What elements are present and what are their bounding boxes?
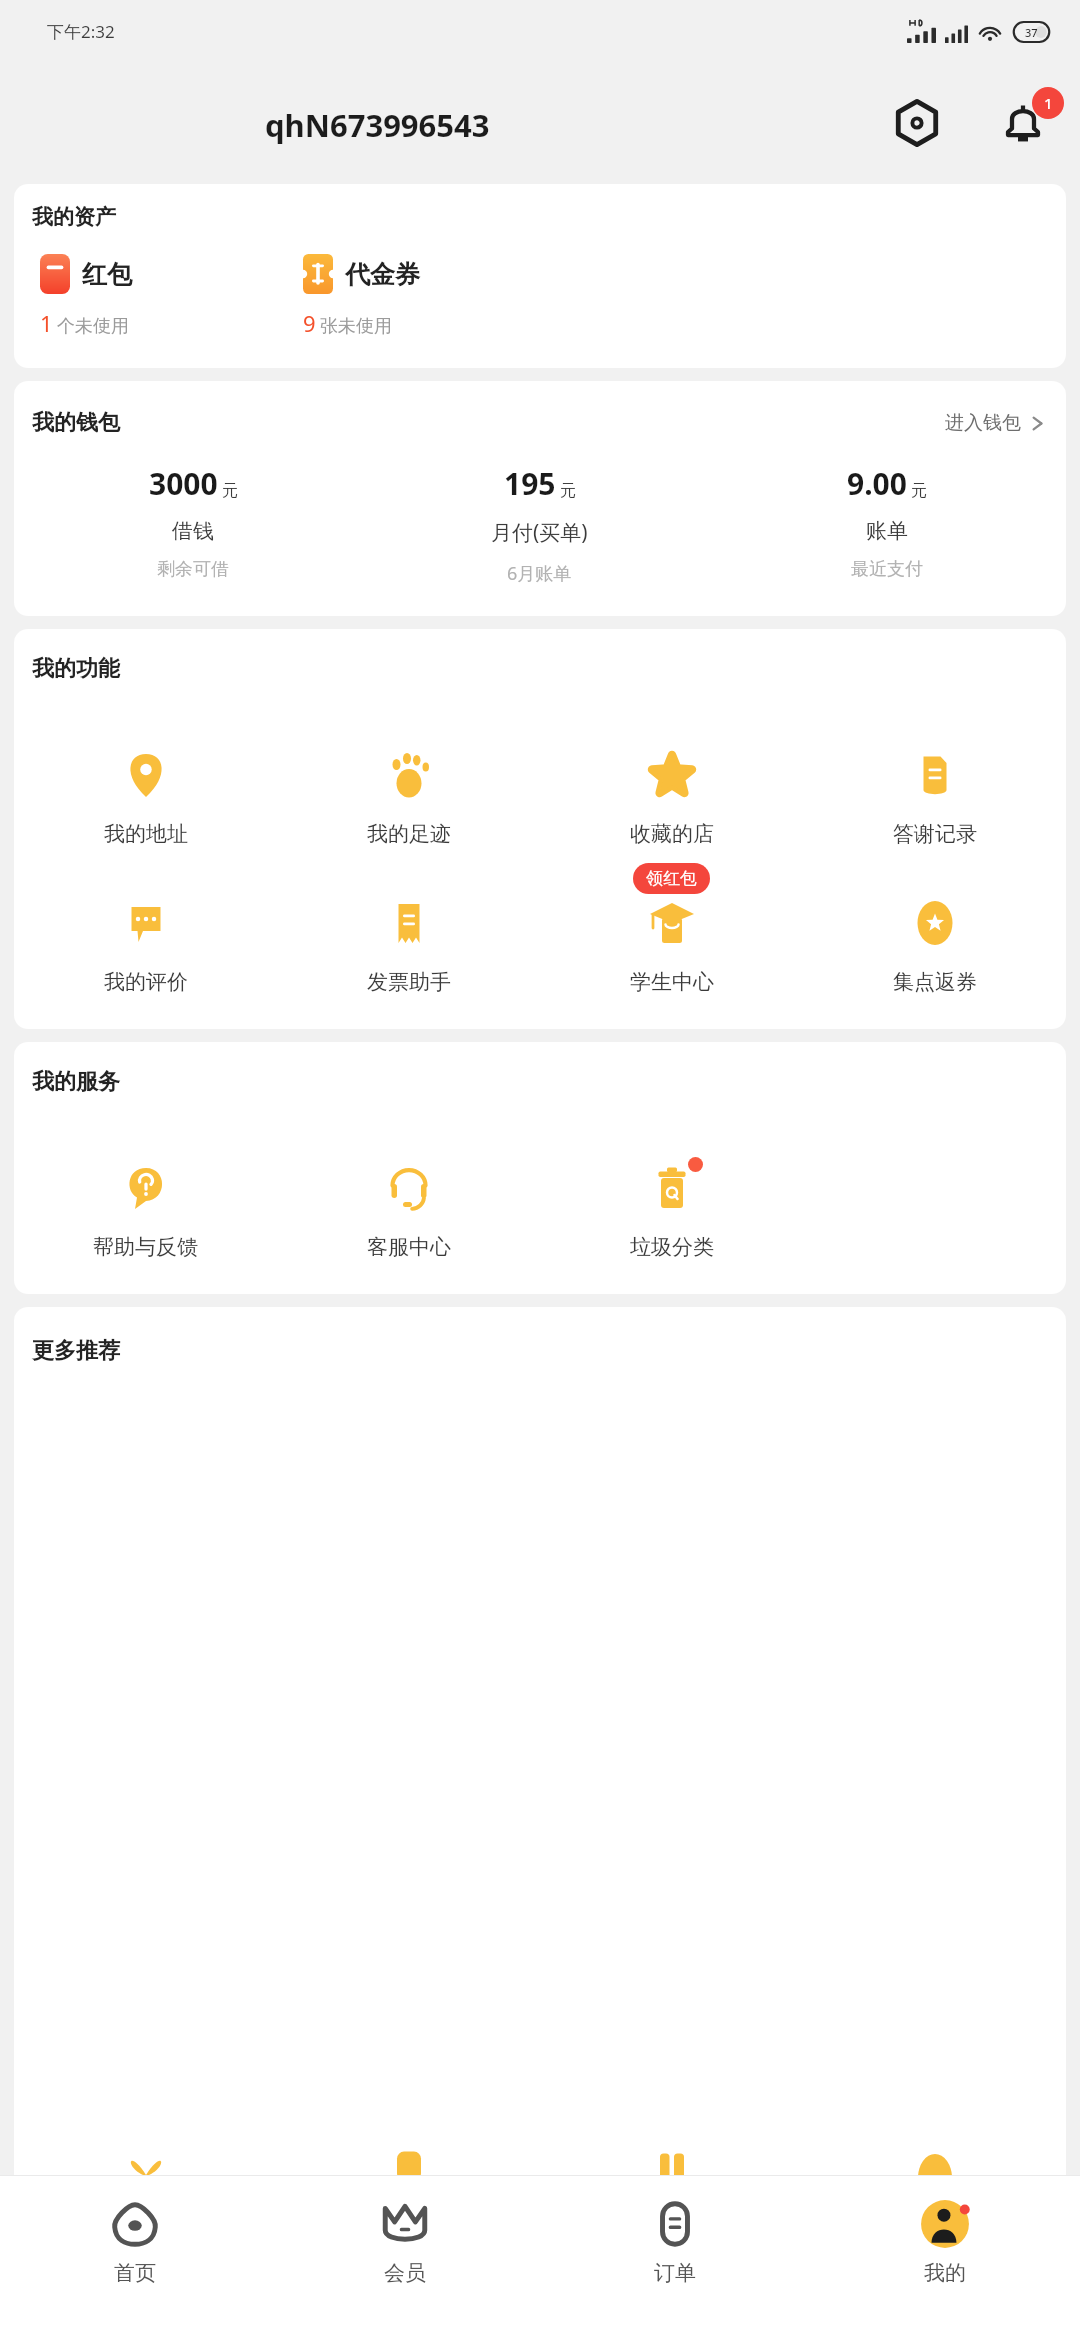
staticText: 我的 <box>924 2260 966 2286</box>
staticText: 红包 <box>82 259 132 290</box>
staticText: 个未使用 <box>57 315 129 338</box>
staticText: qhN673996543 <box>265 104 490 146</box>
staticText: 更多推荐 <box>32 1337 120 1365</box>
button[interactable] <box>277 2145 540 2175</box>
staticText: 6月账单 <box>507 561 572 586</box>
staticText: 剩余可借 <box>157 558 229 581</box>
button[interactable]: Notifications <box>990 90 1056 156</box>
button[interactable]: 订单 <box>540 2176 810 2340</box>
button[interactable]: 垃圾分类 <box>540 1122 803 1264</box>
button[interactable]: 答谢记录 <box>803 709 1066 851</box>
staticText: 最近支付 <box>851 558 923 581</box>
staticText: 我的资产 <box>32 204 116 230</box>
staticText: 9 <box>303 308 316 338</box>
button[interactable] <box>540 2145 803 2175</box>
staticText: 账单 <box>866 518 908 544</box>
button[interactable]: 我的评价 <box>14 857 277 999</box>
staticText: 集点返券 <box>893 969 977 995</box>
button[interactable]: 我的足迹 <box>277 709 540 851</box>
button[interactable]: 发票助手 <box>277 857 540 999</box>
button[interactable]: 集点返券 <box>803 857 1066 999</box>
button[interactable]: 9.00 <box>713 463 1060 581</box>
staticText: 垃圾分类 <box>630 1234 714 1260</box>
button[interactable]: 我的 <box>810 2176 1080 2340</box>
staticText: 学生中心 <box>630 969 714 995</box>
staticText: 代金券 <box>345 259 420 290</box>
staticText: 元 <box>222 481 238 501</box>
staticText: 会员 <box>384 2260 426 2286</box>
button[interactable]: 首页 <box>0 2176 270 2340</box>
staticText: 下午2:32 <box>47 20 115 43</box>
staticText: 我的足迹 <box>367 821 451 847</box>
staticText: 3000 <box>149 463 218 504</box>
staticText: 答谢记录 <box>893 821 977 847</box>
button[interactable] <box>14 2145 277 2175</box>
button[interactable]: 会员 <box>270 2176 540 2340</box>
staticText: 195 <box>504 463 556 504</box>
staticText: 首页 <box>114 2260 156 2286</box>
staticText: 进入钱包 <box>945 411 1021 435</box>
button[interactable]: 进入钱包 <box>941 407 1048 439</box>
button[interactable]: 我的地址 <box>14 709 277 851</box>
button[interactable]: 代金券 <box>277 254 540 338</box>
staticText: 我的服务 <box>32 1068 120 1096</box>
button[interactable]: Scan <box>886 92 948 154</box>
button[interactable]: 3000 <box>20 463 366 581</box>
button[interactable]: 收藏的店 <box>540 709 803 851</box>
staticText: 1 <box>40 308 53 338</box>
staticText: 月付(买单) <box>491 518 588 547</box>
staticText: 领红包 <box>646 868 697 889</box>
staticText: 我的评价 <box>104 969 188 995</box>
button[interactable]: 红包 <box>14 254 277 338</box>
button[interactable] <box>803 2145 1066 2175</box>
staticText: 元 <box>560 481 576 501</box>
staticText: 9.00 <box>847 463 907 504</box>
staticText: 37 <box>1025 25 1038 40</box>
staticText: 1 <box>1044 93 1053 113</box>
staticText: 我的功能 <box>32 655 120 683</box>
button[interactable]: 客服中心 <box>277 1122 540 1264</box>
button[interactable]: 帮助与反馈 <box>14 1122 277 1264</box>
staticText: 张未使用 <box>320 315 392 338</box>
staticText: 客服中心 <box>367 1234 451 1260</box>
staticText: 发票助手 <box>367 969 451 995</box>
button[interactable]: 195 <box>366 463 713 586</box>
staticText: 元 <box>911 481 927 501</box>
staticText: 我的钱包 <box>32 409 120 437</box>
staticText: 我的地址 <box>104 821 188 847</box>
staticText: 借钱 <box>172 518 214 544</box>
staticText: 订单 <box>654 2260 696 2286</box>
staticText: 收藏的店 <box>630 821 714 847</box>
staticText: 帮助与反馈 <box>93 1234 198 1260</box>
button[interactable]: 领红包 <box>540 857 803 999</box>
